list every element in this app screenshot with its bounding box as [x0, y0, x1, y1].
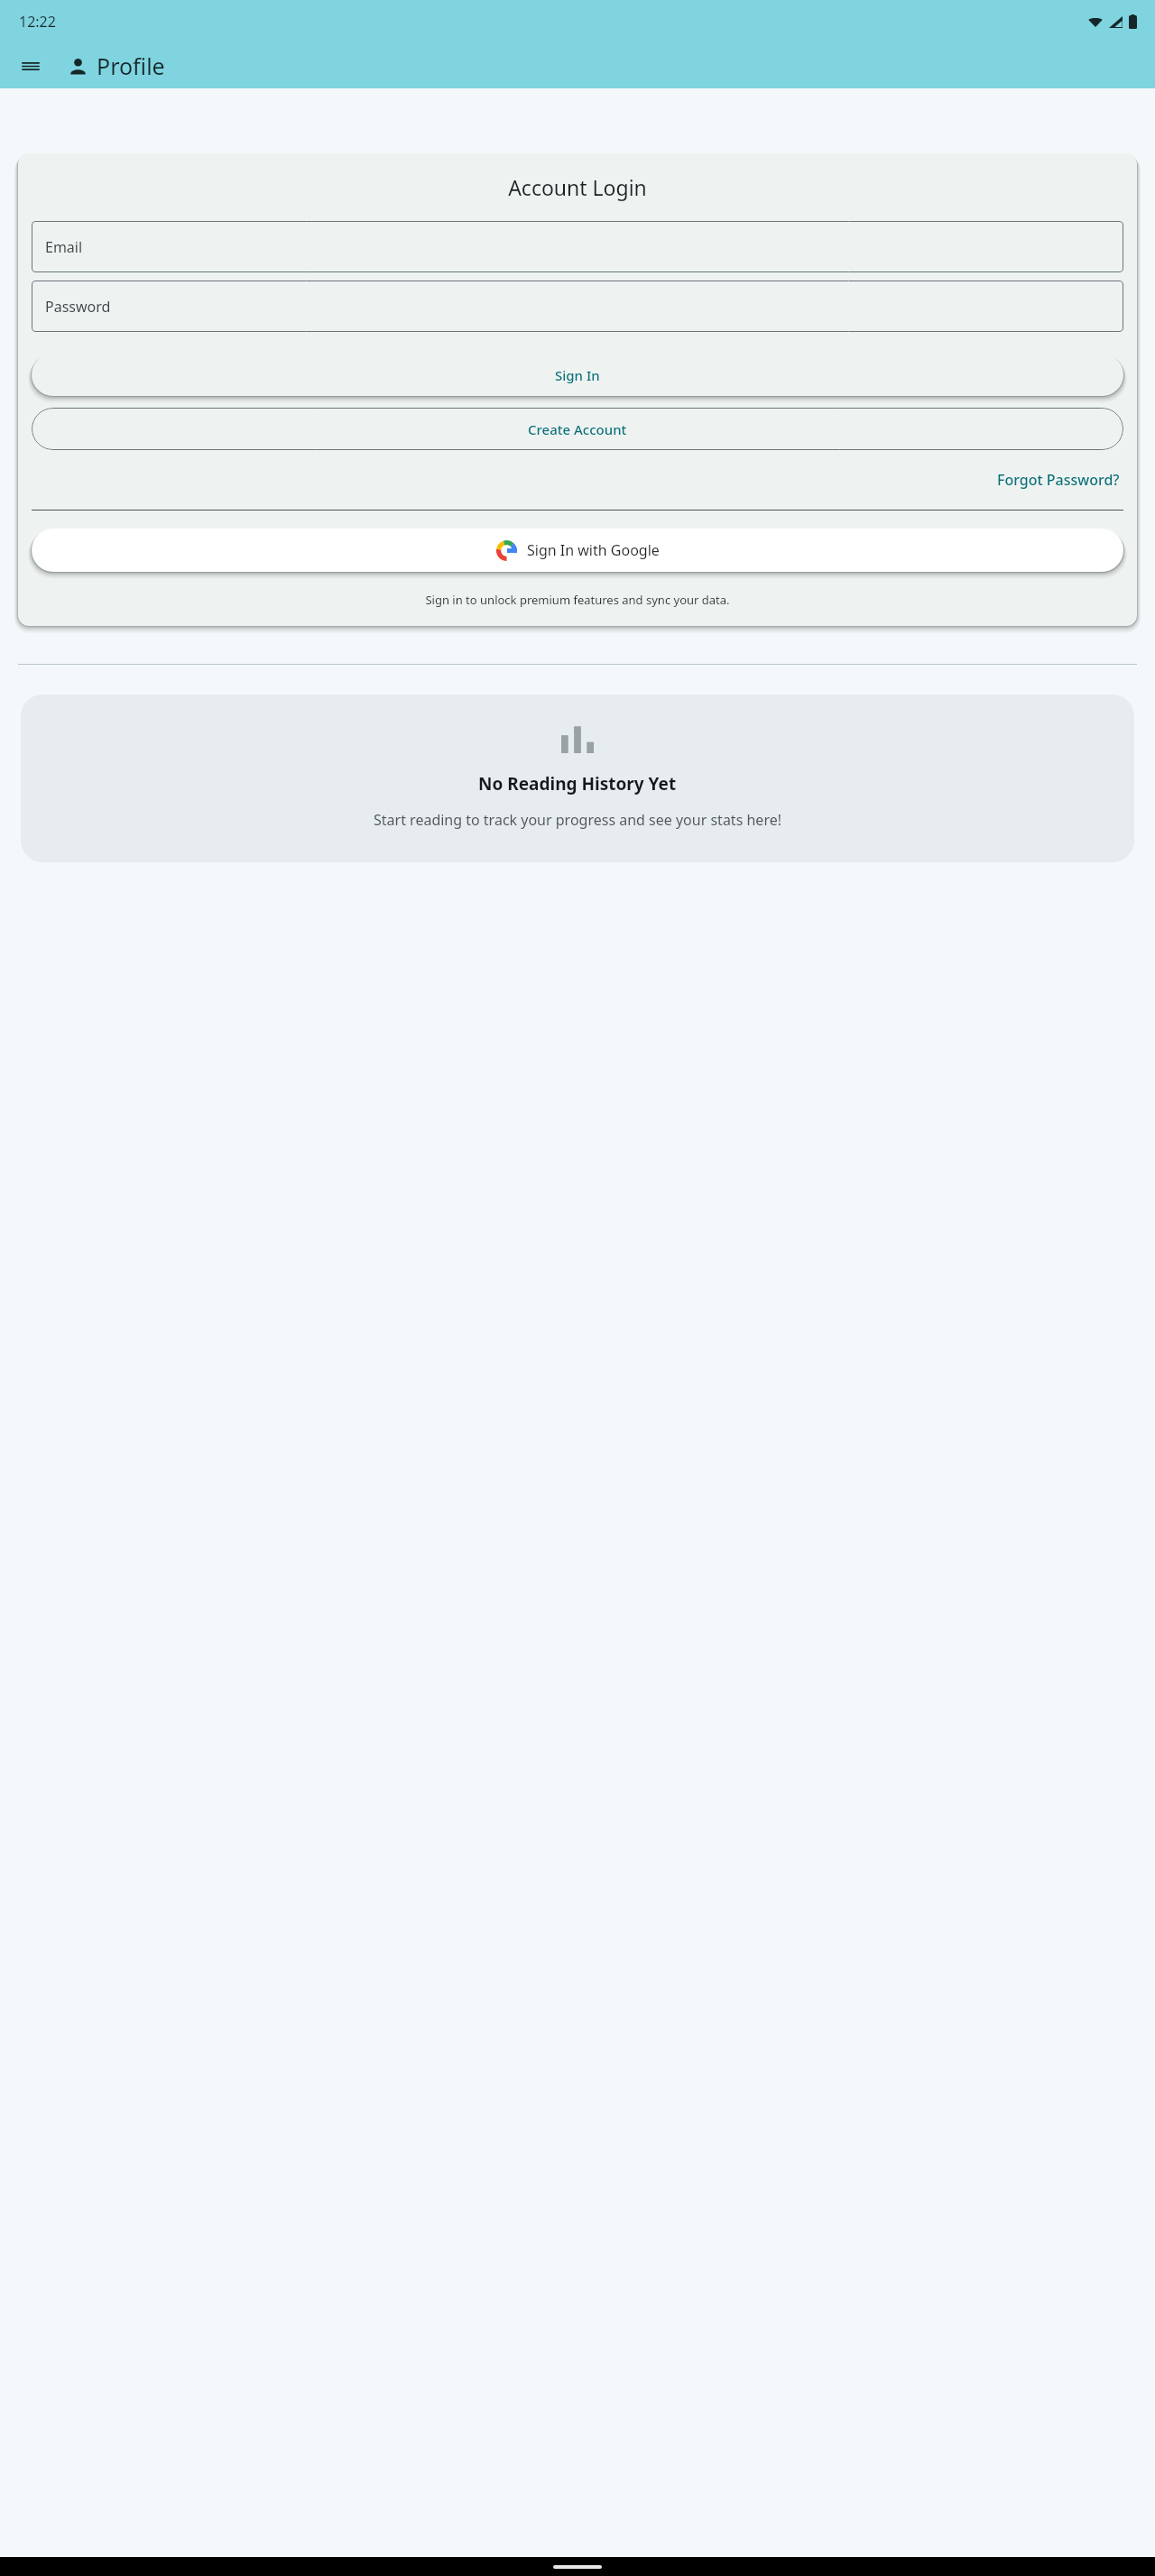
staticText: Password — [45, 297, 111, 317]
button[interactable]: Email — [32, 221, 1123, 272]
staticText: Forgot Password? — [997, 470, 1120, 490]
button[interactable]: Create Account — [32, 408, 1123, 450]
staticText: Profile — [97, 51, 165, 81]
button[interactable]: Password — [32, 281, 1123, 332]
button[interactable]: Sign In — [32, 354, 1123, 396]
button[interactable]: No Reading History Yet — [21, 695, 1134, 862]
button[interactable]: Sign In with Google — [32, 529, 1123, 572]
staticText: Create Account — [528, 420, 627, 438]
staticText: No Reading History Yet — [478, 772, 677, 796]
staticText: 12:22 — [19, 12, 56, 32]
staticText: Email — [45, 237, 83, 257]
staticText: Sign In with Google — [527, 540, 660, 560]
staticText: Account Login — [24, 173, 1131, 201]
button[interactable]: Forgot Password? — [993, 465, 1123, 495]
staticText: Sign In — [555, 366, 600, 384]
staticText: Start reading to track your progress and… — [46, 810, 1109, 830]
button[interactable]: Open navigation menu — [11, 46, 51, 86]
staticText: Sign in to unlock premium features and s… — [32, 592, 1123, 608]
